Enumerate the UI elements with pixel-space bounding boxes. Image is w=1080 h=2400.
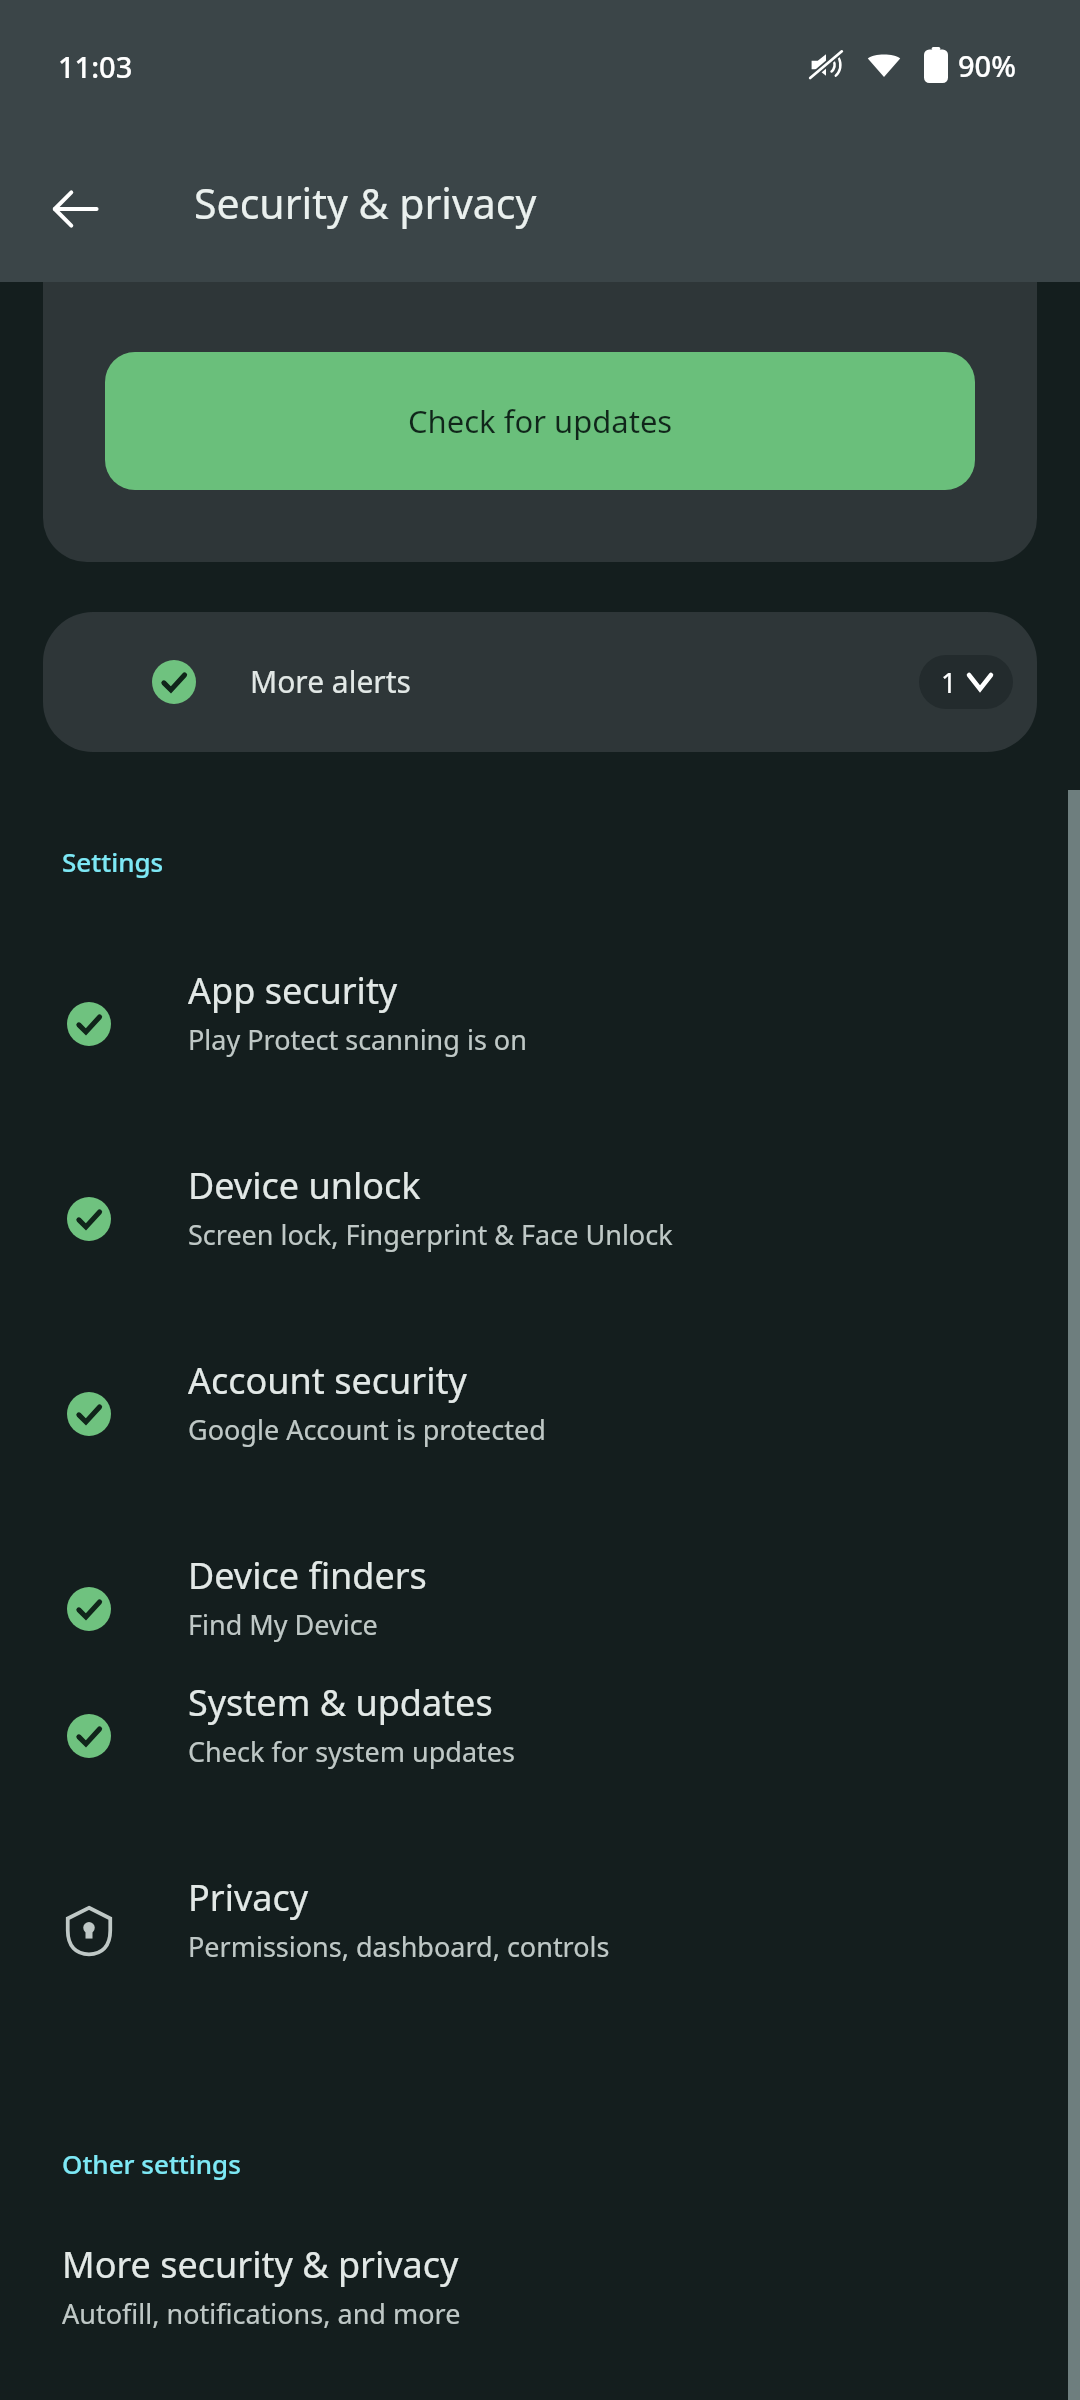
staticText: There may be updates available for your …	[105, 174, 725, 212]
staticText: More security & privacy	[62, 2240, 459, 2289]
staticText: Settings	[62, 844, 164, 879]
staticText: Autofill, notifications, and more	[62, 2295, 461, 2332]
button[interactable]: Device unlock	[0, 1139, 1080, 1304]
staticText: Check for updates	[408, 400, 673, 442]
staticText: More alerts	[250, 661, 411, 702]
staticText: Check for system updates	[188, 1733, 515, 1770]
staticText: 90%	[958, 46, 1016, 85]
staticText: Privacy	[188, 1873, 309, 1922]
button[interactable]: More alerts	[43, 612, 1037, 752]
staticText: Device finders	[188, 1551, 427, 1600]
button[interactable]: Check for updates	[105, 352, 975, 490]
staticText: 1	[941, 664, 957, 701]
staticText: Other settings	[62, 2146, 241, 2181]
button[interactable]: App security	[0, 944, 1080, 1109]
staticText: App security	[188, 966, 398, 1015]
button[interactable]: Device finders	[0, 1529, 1080, 1694]
button[interactable]: 1	[919, 655, 1013, 709]
staticText: Account security	[188, 1356, 467, 1405]
staticText: Play Protect scanning is on	[188, 1021, 527, 1058]
button[interactable]: More security & privacy	[0, 2240, 1080, 2370]
staticText: Google Account is protected	[188, 1411, 546, 1448]
staticText: Security & privacy	[194, 175, 537, 231]
staticText: Device unlock	[188, 1161, 421, 1210]
button[interactable]: Account security	[0, 1334, 1080, 1499]
staticText: Screen lock, Fingerprint & Face Unlock	[188, 1216, 673, 1253]
button[interactable]: System & updates	[0, 1656, 1080, 1821]
staticText: 11:03	[58, 47, 133, 86]
staticText: Find My Device	[188, 1606, 378, 1643]
staticText: Permissions, dashboard, controls	[188, 1928, 610, 1965]
staticText: System & updates	[188, 1678, 493, 1727]
button[interactable]: Privacy	[0, 1851, 1080, 2016]
button[interactable]: Back	[27, 161, 123, 257]
